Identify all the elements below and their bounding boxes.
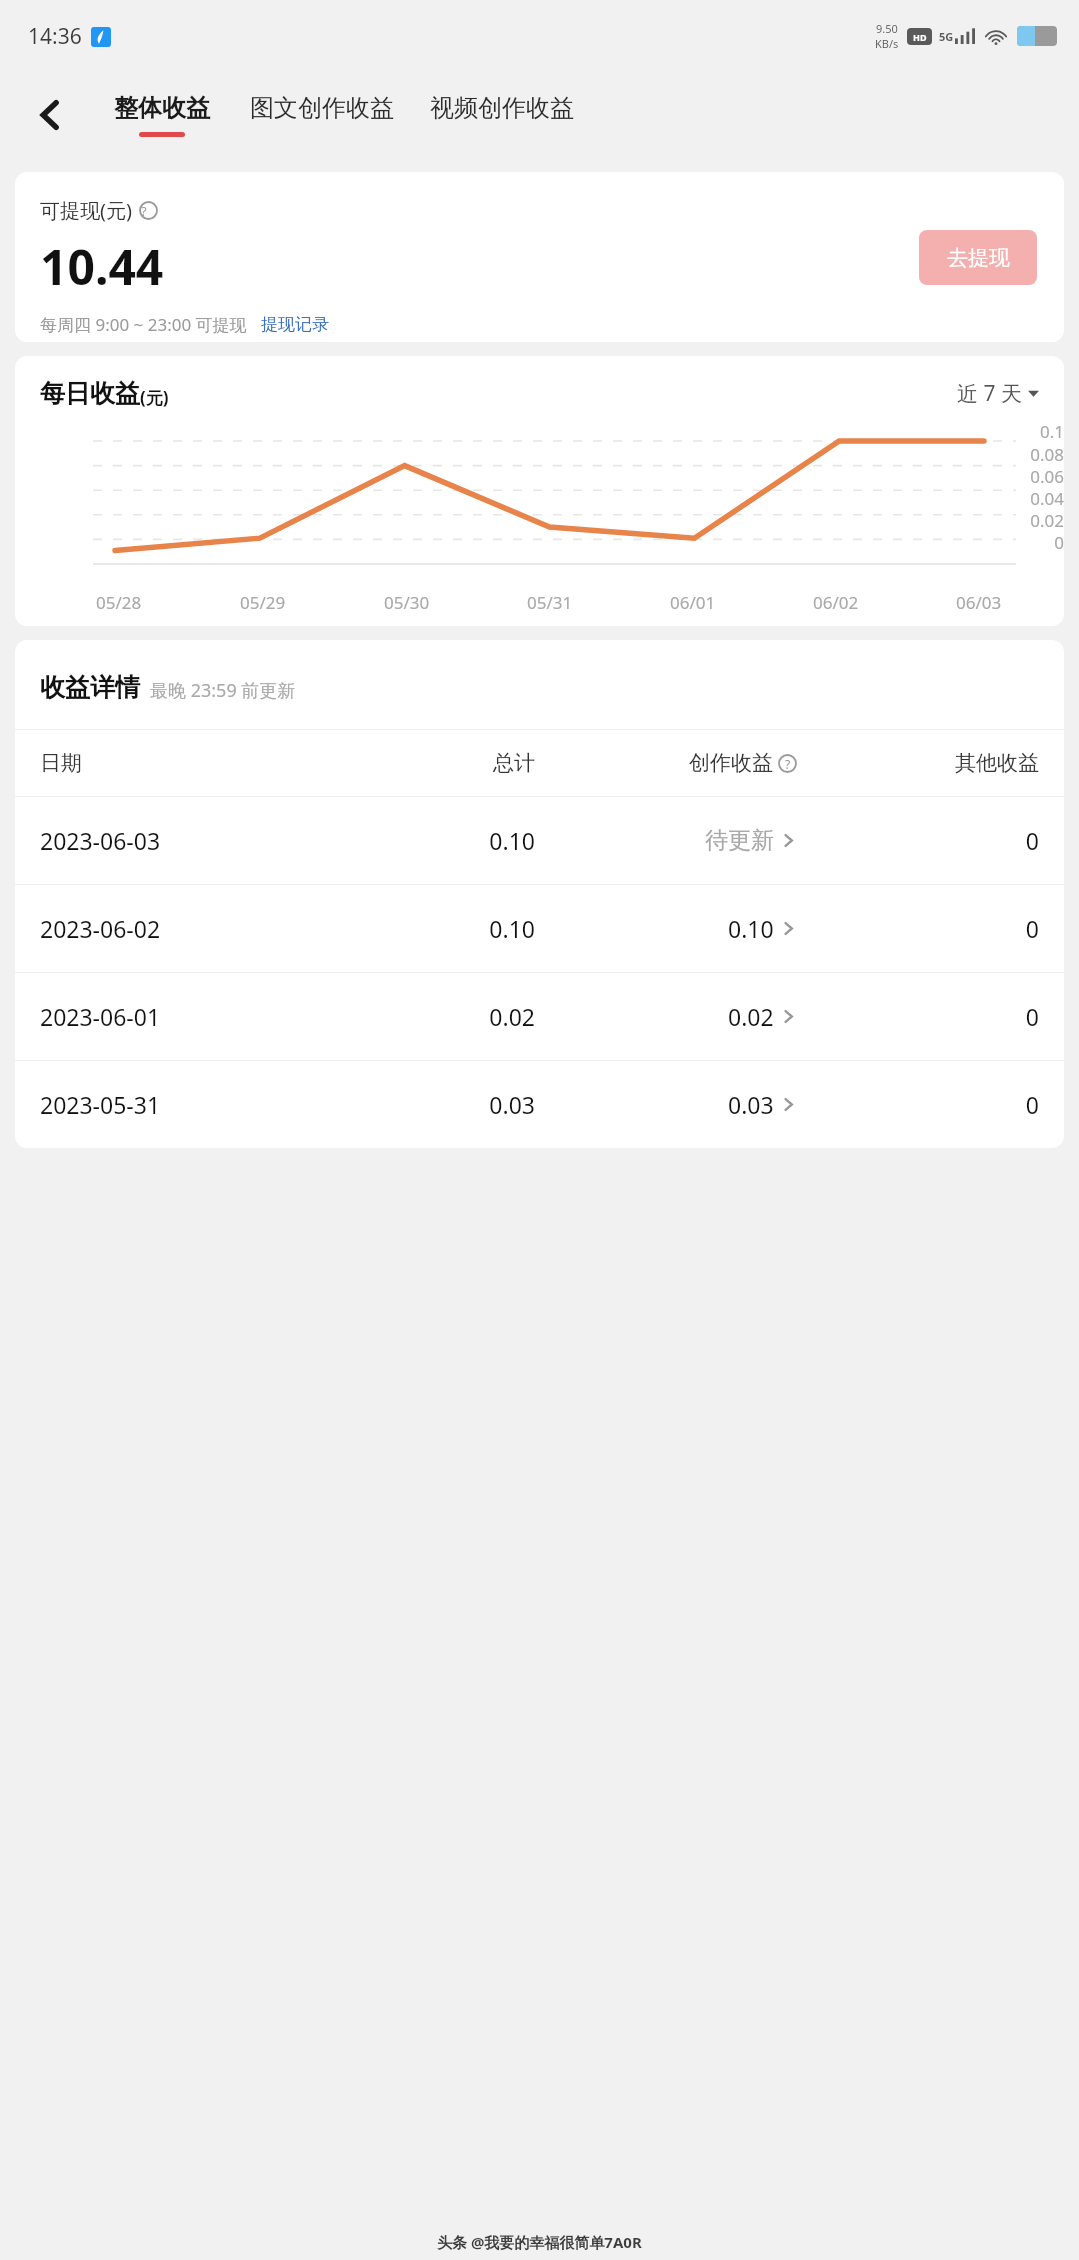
staticText: 06/02 (813, 591, 859, 614)
staticText: 05/30 (384, 591, 430, 614)
staticText: 0.1 (998, 420, 1064, 443)
staticText: 0.04 (998, 487, 1064, 509)
staticText: 0 (797, 913, 1039, 944)
staticText: 0 (797, 1001, 1039, 1032)
button[interactable]: 图文创作收益 (248, 89, 396, 141)
staticText: 5G (939, 29, 954, 44)
button[interactable]: 提现记录 (261, 314, 329, 335)
staticText: 0 (797, 1089, 1039, 1120)
staticText: 06/03 (956, 591, 1002, 614)
staticText: 2023-06-02 (40, 913, 341, 944)
button[interactable]: 2023-06-02 (15, 885, 1064, 972)
staticText: 头条 @我要的幸福很简单7A0R (437, 2232, 642, 2252)
staticText: 2023-06-01 (40, 1001, 341, 1032)
staticText: 0 (998, 531, 1064, 553)
staticText: 0.10 (341, 825, 535, 856)
button[interactable]: 去提现 (919, 230, 1037, 285)
staticText: 0.02 (728, 1001, 774, 1032)
staticText: 可提现(元) (40, 197, 132, 224)
button[interactable]: Back (20, 85, 80, 145)
staticText: 整体收益 (114, 93, 210, 123)
staticText: 最晚 23:59 前更新 (150, 678, 296, 703)
staticText: 收益详情 (40, 672, 140, 703)
button[interactable]: 近 7 天 (957, 379, 1039, 408)
staticText: 视频创作收益 (430, 93, 574, 123)
staticText: 图文创作收益 (250, 93, 394, 123)
button[interactable]: 2023-05-31 (15, 1061, 1064, 1148)
staticText: 0.06 (998, 465, 1064, 487)
staticText: 0.10 (728, 913, 774, 944)
staticText: 每周四 9:00 ~ 23:00 可提现 (40, 313, 247, 336)
staticText: 0.02 (341, 1001, 535, 1032)
staticText: 每日收益 (40, 378, 140, 409)
staticText: 14:36 (28, 22, 82, 51)
button[interactable]: Help (139, 201, 158, 220)
staticText: 05/28 (96, 591, 142, 614)
staticText: ? (785, 756, 791, 772)
button[interactable]: 2023-06-03 (15, 797, 1064, 884)
staticText: 0.08 (998, 443, 1064, 465)
staticText: KB/s (875, 36, 899, 51)
staticText: 0.03 (728, 1089, 774, 1120)
staticText: 05/29 (240, 591, 286, 614)
staticText: 近 7 天 (957, 379, 1022, 408)
staticText: 2023-06-03 (40, 825, 341, 856)
staticText: 创作收益 (689, 750, 773, 776)
staticText: 总计 (341, 750, 535, 776)
staticText: 0.03 (341, 1089, 535, 1120)
staticText: 去提现 (947, 245, 1010, 271)
staticText: 日期 (40, 750, 341, 776)
staticText: 待更新 (705, 826, 774, 855)
staticText: 其他收益 (797, 750, 1039, 776)
staticText: 0.02 (998, 509, 1064, 531)
staticText: 0.10 (341, 913, 535, 944)
staticText: (元) (140, 386, 169, 409)
staticText: 06/01 (670, 591, 716, 614)
staticText: 0 (797, 825, 1039, 856)
button[interactable]: 2023-06-01 (15, 973, 1064, 1060)
button[interactable]: 视频创作收益 (428, 89, 576, 141)
staticText: 9.50 (876, 21, 898, 36)
staticText: HD (913, 31, 927, 43)
staticText: 05/31 (527, 591, 573, 614)
staticText: ? (141, 202, 147, 220)
button[interactable]: 整体收益 (112, 89, 212, 141)
staticText: 2023-05-31 (40, 1089, 341, 1120)
staticText: 提现记录 (261, 314, 329, 335)
staticText: 10.44 (40, 234, 164, 299)
